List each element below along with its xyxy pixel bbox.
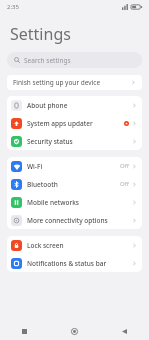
button[interactable]: Bluetooth — [7, 175, 142, 193]
button[interactable]: Wi-Fi — [7, 157, 142, 175]
staticText: More connectivity options — [27, 216, 108, 225]
staticText: 2:35 — [7, 3, 19, 11]
staticText: Mobile networks — [27, 198, 79, 207]
button[interactable]: Notifications & status bar — [7, 254, 142, 272]
staticText: Wi-Fi — [27, 162, 43, 171]
button[interactable]: Security status — [7, 132, 142, 150]
button[interactable]: More connectivity options — [7, 211, 142, 229]
staticText: Lock screen — [27, 241, 64, 250]
staticText: Off — [120, 180, 129, 188]
staticText: System apps updater — [27, 119, 93, 128]
staticText: Finish setting up your device — [13, 78, 101, 87]
staticText: Bluetooth — [27, 180, 58, 189]
staticText: Settings — [10, 23, 71, 45]
button[interactable]: Home — [49, 322, 99, 340]
staticText: About phone — [27, 101, 68, 110]
button[interactable]: Back — [99, 322, 149, 340]
staticText: Notifications & status bar — [27, 259, 107, 268]
button[interactable]: Recent apps — [0, 322, 49, 340]
button[interactable]: Lock screen — [7, 236, 142, 254]
staticText: Off — [120, 162, 129, 170]
button[interactable]: Search settings — [7, 52, 142, 68]
staticText: Search settings — [24, 56, 71, 65]
button[interactable]: Finish setting up your device — [7, 75, 142, 90]
button[interactable]: About phone — [7, 96, 142, 114]
button[interactable]: Mobile networks — [7, 193, 142, 211]
staticText: Security status — [27, 137, 73, 146]
button[interactable]: System apps updater — [7, 114, 142, 132]
